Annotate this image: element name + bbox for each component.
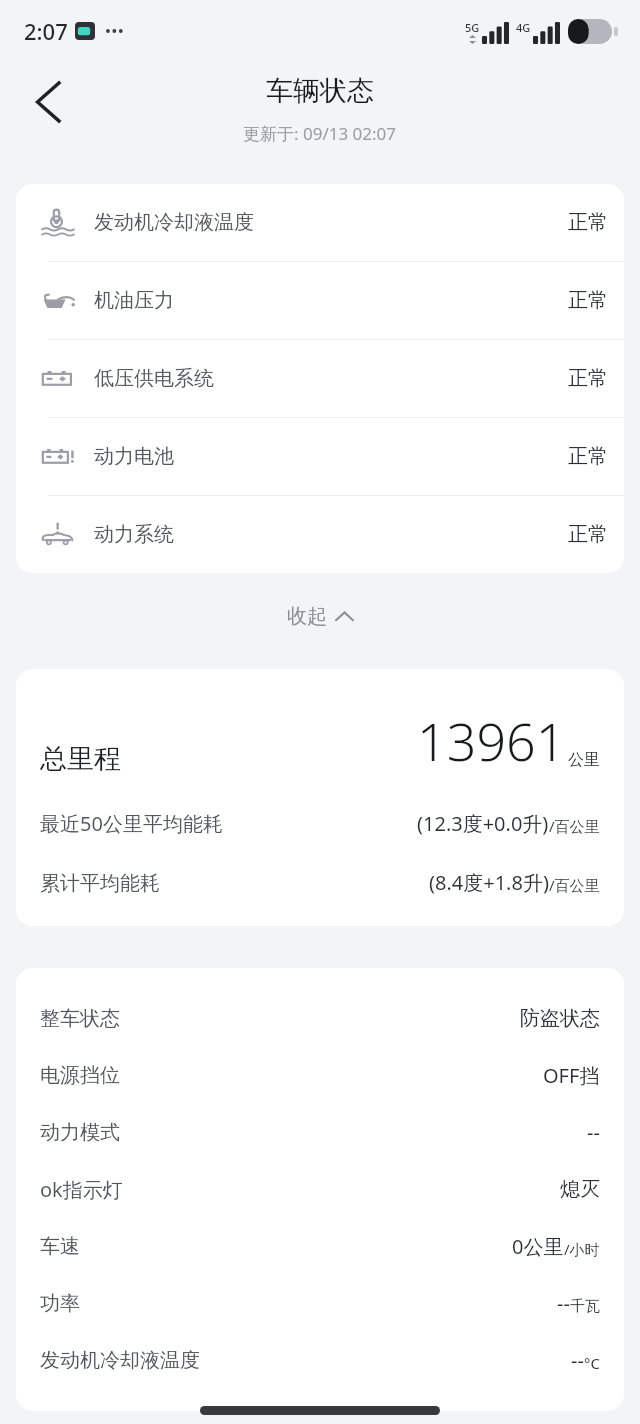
button[interactable]: Back bbox=[14, 68, 82, 136]
staticText: 4G bbox=[516, 20, 531, 35]
staticText: 正常 bbox=[568, 366, 608, 391]
staticText: (12.3度+0.0升) bbox=[417, 810, 549, 837]
button[interactable]: 动力电池 bbox=[16, 418, 624, 495]
staticText: /百公里 bbox=[549, 816, 600, 836]
staticText: 千瓦 bbox=[570, 1297, 600, 1316]
staticText: 熄灭 bbox=[560, 1177, 600, 1202]
staticText: 更新于: 09/13 02:07 bbox=[243, 122, 397, 145]
button[interactable]: 整车状态 bbox=[40, 990, 600, 1047]
staticText: -- bbox=[587, 1119, 600, 1146]
staticText: 防盗状态 bbox=[520, 1006, 600, 1031]
staticText: 低压供电系统 bbox=[94, 366, 214, 391]
staticText: 发动机冷却液温度 bbox=[94, 210, 254, 235]
button[interactable]: 收起 bbox=[269, 596, 371, 637]
staticText: 累计平均能耗 bbox=[40, 871, 160, 896]
staticText: -- bbox=[557, 1290, 570, 1317]
staticText: 机油压力 bbox=[94, 288, 174, 313]
staticText: 动力电池 bbox=[94, 444, 174, 469]
staticText: /小时 bbox=[564, 1239, 600, 1259]
staticText: 总里程 bbox=[40, 742, 121, 776]
staticText: 正常 bbox=[568, 210, 608, 235]
button[interactable]: 低压供电系统 bbox=[16, 340, 624, 417]
staticText: 收起 bbox=[287, 604, 327, 629]
staticText: 2:07 bbox=[24, 16, 68, 46]
staticText: 车速 bbox=[40, 1234, 80, 1259]
staticText: 正常 bbox=[568, 288, 608, 313]
staticText: (8.4度+1.8升) bbox=[429, 869, 549, 896]
staticText: 0公里 bbox=[512, 1233, 564, 1260]
staticText: 车辆状态 bbox=[266, 74, 374, 108]
button[interactable]: ok指示灯 bbox=[40, 1161, 600, 1218]
staticText: 功率 bbox=[40, 1291, 80, 1316]
button[interactable]: 最近50公里平均能耗 bbox=[40, 810, 600, 837]
staticText: 整车状态 bbox=[40, 1006, 120, 1031]
staticText: 发动机冷却液温度 bbox=[40, 1348, 200, 1373]
button[interactable]: 电源挡位 bbox=[40, 1047, 600, 1104]
staticText: -- bbox=[571, 1347, 584, 1374]
staticText: 13961 bbox=[417, 705, 566, 776]
button[interactable]: 机油压力 bbox=[16, 262, 624, 339]
staticText: 动力模式 bbox=[40, 1120, 120, 1145]
button[interactable]: 累计平均能耗 bbox=[40, 869, 600, 896]
staticText: 公里 bbox=[568, 750, 600, 770]
staticText: °C bbox=[584, 1353, 600, 1373]
button[interactable]: 发动机冷却液温度 bbox=[40, 1332, 600, 1389]
button[interactable]: 动力模式 bbox=[40, 1104, 600, 1161]
staticText: 正常 bbox=[568, 444, 608, 469]
staticText: 正常 bbox=[568, 522, 608, 547]
staticText: 电源挡位 bbox=[40, 1063, 120, 1088]
staticText: OFF挡 bbox=[543, 1062, 600, 1089]
staticText: 最近50公里平均能耗 bbox=[40, 810, 223, 837]
button[interactable]: 发动机冷却液温度 bbox=[16, 184, 624, 261]
staticText: /百公里 bbox=[549, 875, 600, 895]
button[interactable]: 车速 bbox=[40, 1218, 600, 1275]
staticText: 5G bbox=[465, 20, 480, 35]
button[interactable]: 动力系统 bbox=[16, 496, 624, 573]
staticText: ok指示灯 bbox=[40, 1176, 123, 1203]
button[interactable]: 功率 bbox=[40, 1275, 600, 1332]
staticText: 动力系统 bbox=[94, 522, 174, 547]
